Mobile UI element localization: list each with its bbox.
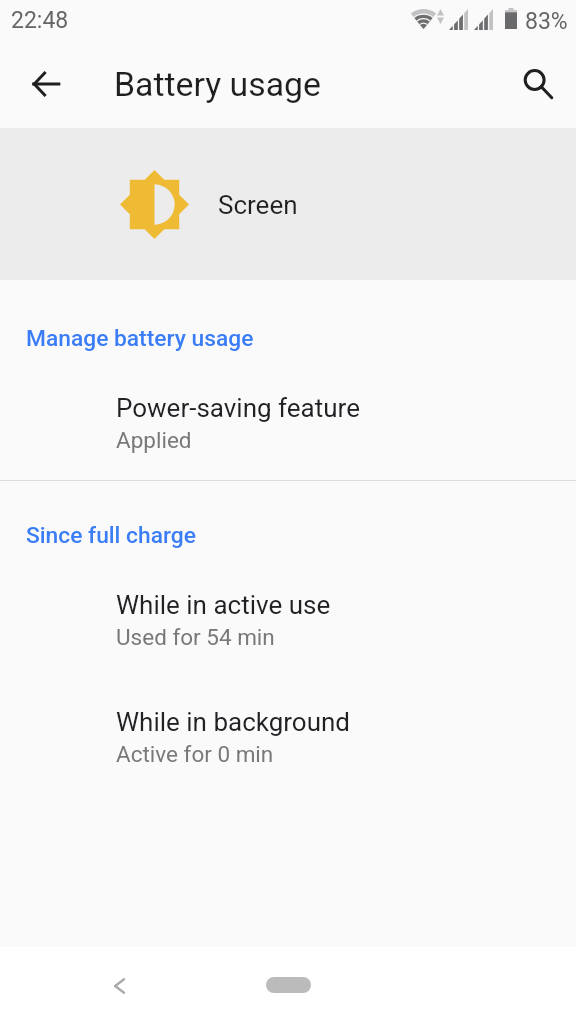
button[interactable]: While in background — [0, 694, 576, 766]
button[interactable]: Back — [92, 959, 146, 1013]
staticText: While in active use — [116, 590, 331, 620]
staticText: While in background — [116, 707, 351, 737]
staticText: Used for 54 min — [116, 624, 275, 650]
staticText: Power-saving feature — [116, 393, 360, 423]
staticText: 22:48 — [11, 7, 69, 34]
staticText: Applied — [116, 427, 192, 453]
button[interactable]: Search — [506, 52, 570, 116]
button[interactable]: Back — [14, 52, 78, 116]
staticText: Screen — [218, 190, 298, 220]
staticText: Battery usage — [114, 65, 321, 105]
staticText: Active for 0 min — [116, 741, 274, 767]
staticText: 83% — [525, 8, 568, 35]
button[interactable]: Home — [266, 977, 311, 993]
staticText: Manage battery usage — [26, 325, 254, 352]
button[interactable]: Power-saving feature — [0, 380, 576, 452]
staticText: Since full charge — [26, 522, 196, 549]
button[interactable]: While in active use — [0, 577, 576, 649]
